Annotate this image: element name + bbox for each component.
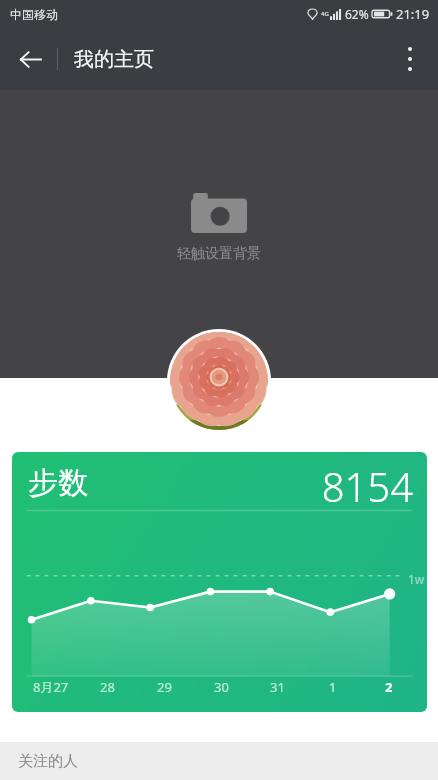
staticText: 29	[157, 678, 172, 696]
button[interactable]: Profile photo	[170, 332, 268, 430]
staticText: 步数	[28, 464, 88, 502]
button[interactable]: Set background	[0, 90, 438, 378]
staticText: 62%	[345, 6, 369, 22]
staticText: 1w	[408, 571, 425, 587]
staticText: 30	[214, 678, 229, 696]
staticText: 21:19	[396, 5, 430, 23]
staticText: 我的主页	[74, 47, 154, 72]
staticText: 关注的人	[18, 752, 78, 771]
staticText: 4G	[321, 10, 329, 18]
staticText: 8154	[321, 459, 413, 513]
staticText: 1	[329, 678, 337, 696]
button[interactable]: 关注的人	[0, 742, 438, 780]
staticText: 31	[270, 678, 285, 696]
staticText: 2	[385, 678, 393, 696]
button[interactable]: Back	[8, 37, 52, 81]
staticText: 中国移动	[10, 7, 58, 22]
staticText: 28	[100, 678, 115, 696]
staticText: 8月27	[33, 678, 69, 696]
button[interactable]: More options	[388, 37, 432, 81]
button[interactable]: 步数	[12, 452, 427, 712]
staticText: 轻触设置背景	[177, 245, 261, 263]
